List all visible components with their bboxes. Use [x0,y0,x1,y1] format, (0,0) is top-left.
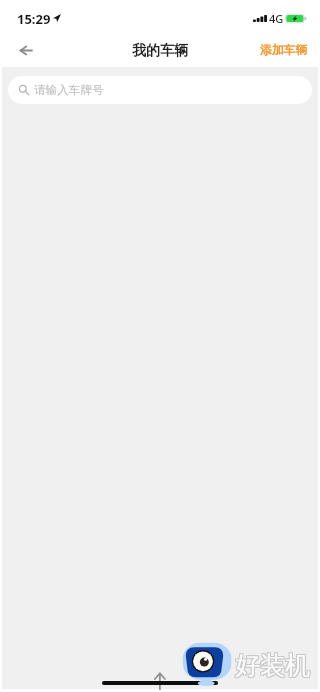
staticText: 好装机 [236,651,311,682]
staticText: 好装机 [236,649,311,680]
staticText: 好装机 [234,649,309,680]
staticText: 请输入车牌号 [34,83,104,98]
staticText: 4G [269,11,284,26]
staticText: 添加车辆 [260,43,308,58]
staticText: 好装机 [234,650,309,681]
staticText: 我的车辆 [132,42,188,60]
staticText: 好装机 [235,650,310,681]
staticText: 好装机 [234,651,309,682]
staticText: 好装机 [235,651,310,682]
button[interactable]: 请输入车牌号 [8,76,312,104]
staticText: 好装机 [236,650,311,681]
button[interactable]: 添加车辆 [254,37,314,64]
button[interactable]: Back [8,33,42,67]
staticText: 好装机 [235,649,310,680]
staticText: 15:29 [17,10,51,28]
